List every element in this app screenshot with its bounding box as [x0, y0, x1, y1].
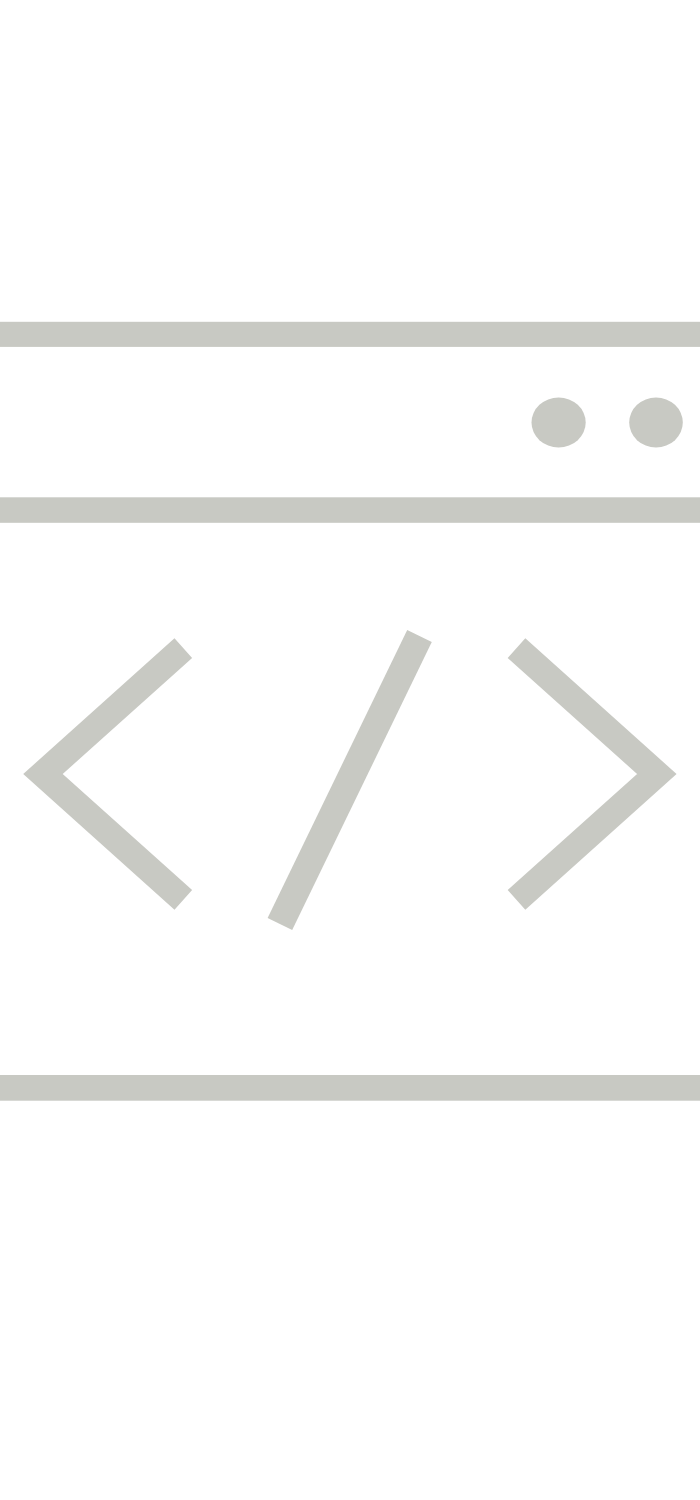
other: Code window illustration: [0, 0, 700, 1500]
